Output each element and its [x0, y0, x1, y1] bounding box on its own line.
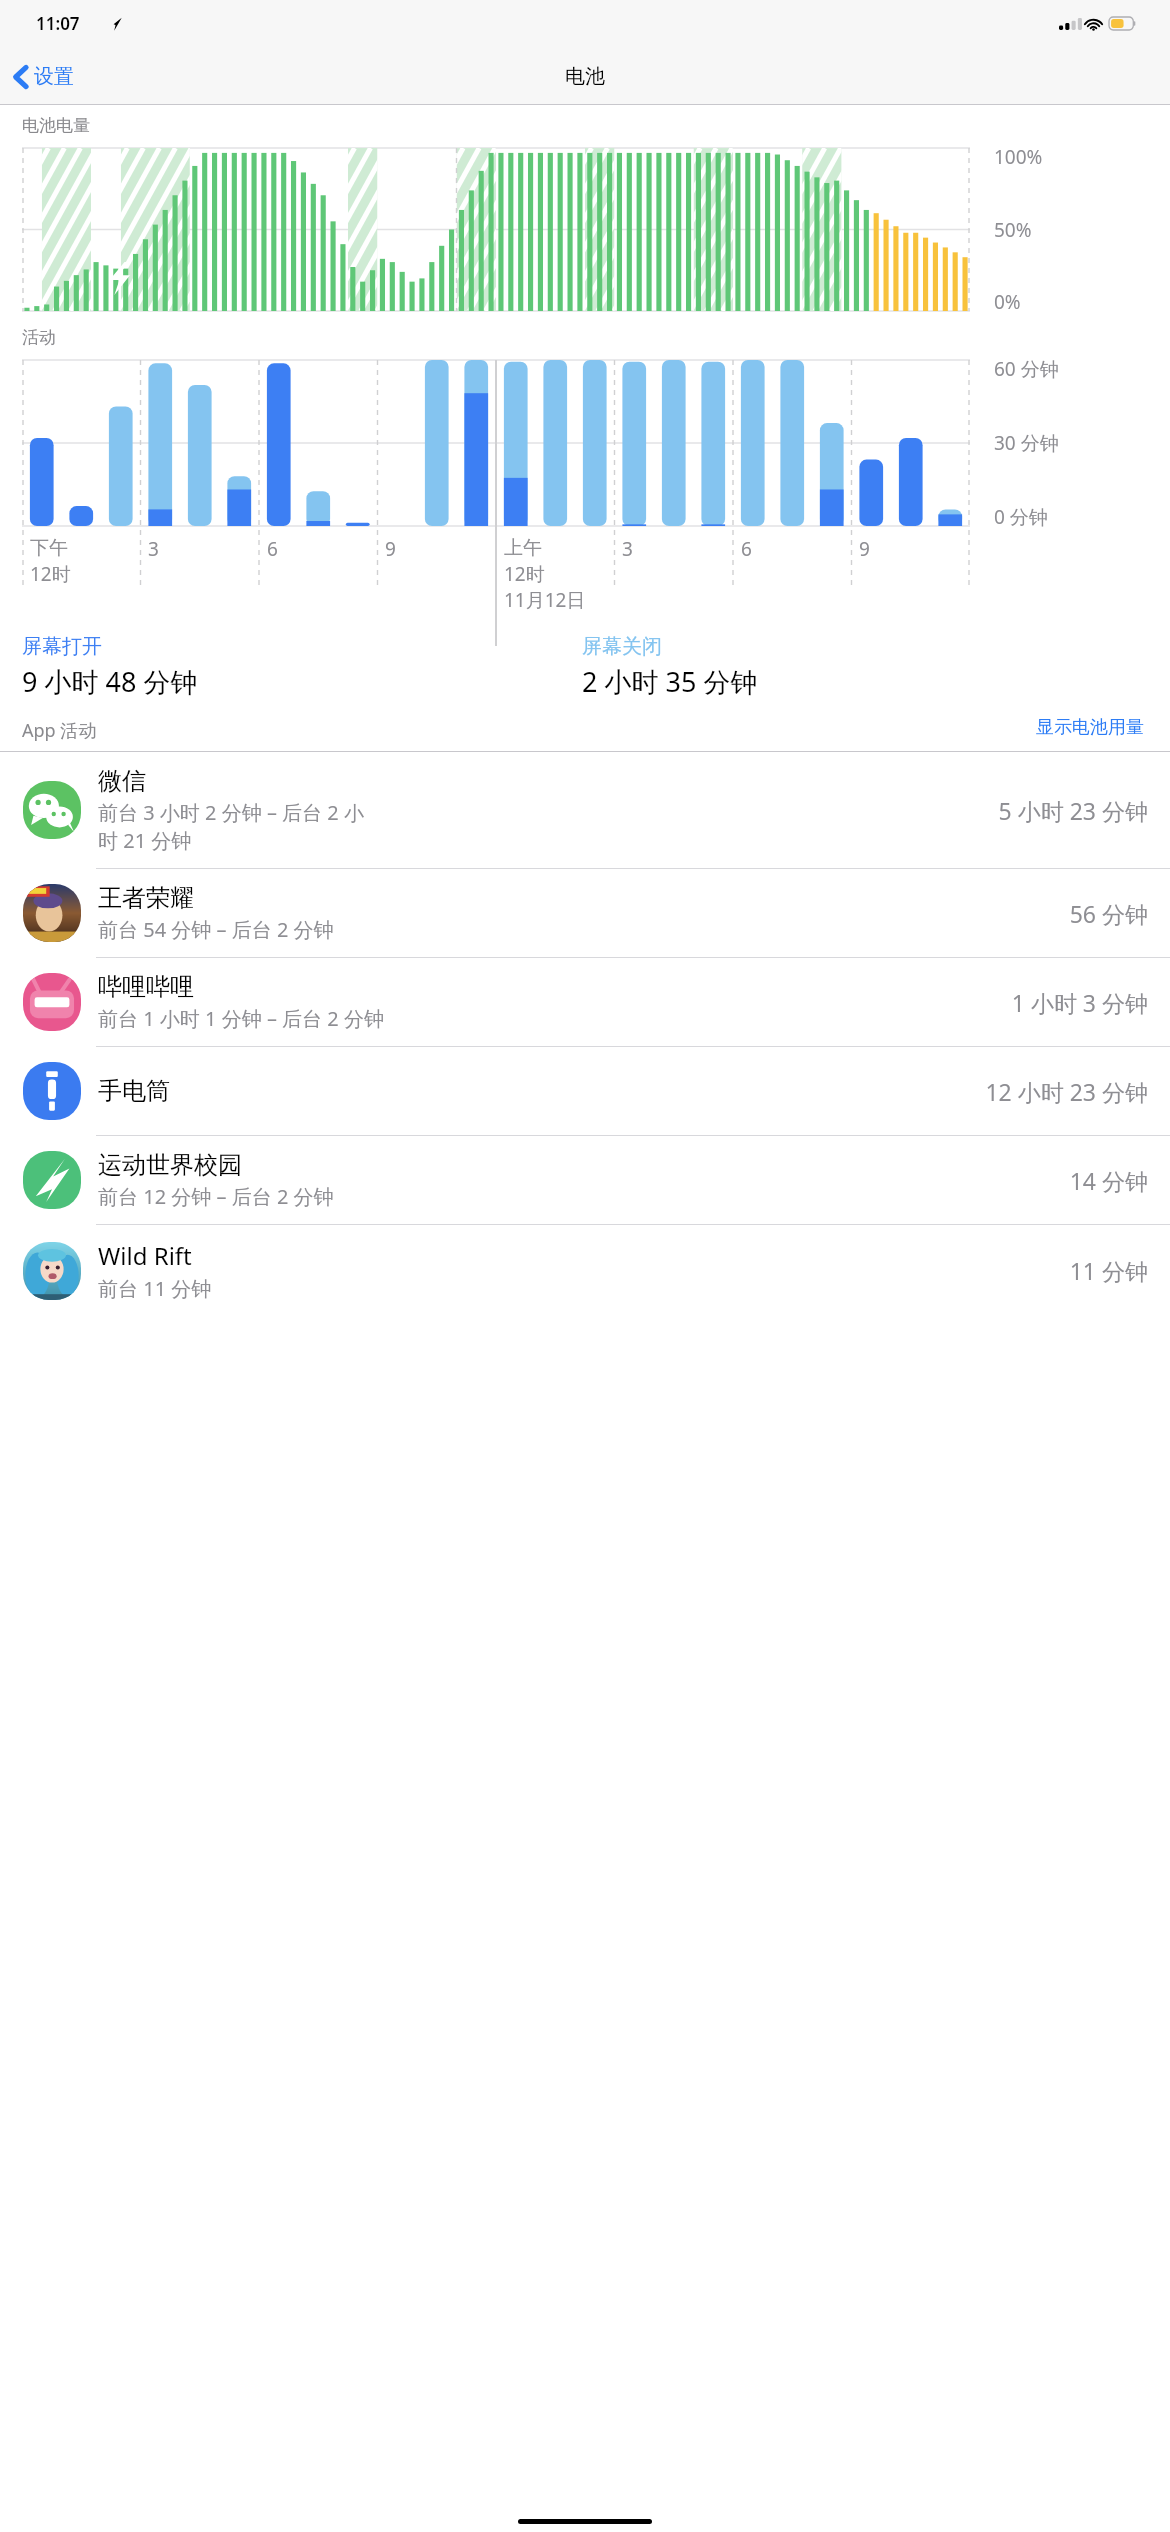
other: 运动世界校园 — [23, 1151, 81, 1209]
staticText: 微信 — [98, 766, 146, 796]
staticText: 屏幕关闭 — [582, 634, 662, 659]
staticText: 9 — [385, 536, 396, 562]
staticText: 0 分钟 — [994, 504, 1048, 530]
staticText: 14 分钟 — [1069, 1165, 1148, 1196]
staticText: Wild Rift — [98, 1239, 192, 1272]
staticText: 电池 — [565, 64, 605, 89]
staticText: 1 小时 3 分钟 — [1011, 987, 1148, 1018]
button[interactable]: 运动世界校园 — [0, 1136, 1170, 1224]
button[interactable]: 设置 — [0, 58, 84, 95]
staticText: 3 — [622, 536, 633, 562]
staticText: 前台 54 分钟 – 后台 2 分钟 — [98, 916, 334, 943]
button[interactable]: 王者荣耀 — [0, 869, 1170, 957]
staticText: 活动 — [22, 327, 56, 348]
staticText: 11:07 — [36, 12, 80, 35]
staticText: 100% — [994, 144, 1043, 170]
staticText: 6 — [741, 536, 752, 562]
staticText: 11 分钟 — [1069, 1255, 1148, 1286]
staticText: 3 — [148, 536, 159, 562]
staticText: 6 — [267, 536, 278, 562]
staticText: 30 分钟 — [994, 430, 1059, 456]
staticText: 屏幕打开 — [22, 634, 102, 659]
staticText: 前台 12 分钟 – 后台 2 分钟 — [98, 1183, 334, 1210]
staticText: App 活动 — [22, 718, 97, 743]
other: 手电筒 — [23, 1062, 81, 1120]
staticText: 0% — [994, 289, 1021, 315]
other: 王者荣耀 — [23, 884, 81, 942]
staticText: 下午 12时 — [30, 536, 71, 586]
staticText: 设置 — [34, 64, 74, 89]
staticText: 50% — [994, 217, 1032, 243]
button[interactable]: 手电筒 — [0, 1047, 1170, 1135]
staticText: 哔哩哔哩 — [98, 972, 194, 1002]
staticText: 9 小时 48 分钟 — [22, 663, 198, 700]
button[interactable]: 显示电池用量 — [1032, 712, 1148, 743]
staticText: 电池电量 — [22, 115, 90, 136]
other: 微信 — [23, 781, 81, 839]
staticText: 56 分钟 — [1069, 898, 1148, 929]
other: Wild Rift — [23, 1242, 81, 1300]
staticText: 王者荣耀 — [98, 883, 194, 913]
staticText: 60 分钟 — [994, 356, 1059, 382]
staticText: 前台 1 小时 1 分钟 – 后台 2 分钟 — [98, 1005, 384, 1032]
staticText: 显示电池用量 — [1036, 716, 1144, 739]
staticText: 5 小时 23 分钟 — [998, 795, 1148, 826]
other: 哔哩哔哩 — [23, 973, 81, 1031]
staticText: 前台 11 分钟 — [98, 1275, 212, 1302]
staticText: 手电筒 — [98, 1076, 170, 1106]
button[interactable]: 微信 — [0, 752, 1170, 868]
staticText: 12 小时 23 分钟 — [985, 1076, 1148, 1107]
staticText: 9 — [859, 536, 870, 562]
staticText: 2 小时 35 分钟 — [582, 663, 758, 700]
button[interactable]: 哔哩哔哩 — [0, 958, 1170, 1046]
staticText: 运动世界校园 — [98, 1150, 242, 1180]
staticText: 上午 12时 11月12日 — [504, 536, 586, 612]
button[interactable]: Wild Rift — [0, 1225, 1170, 1316]
staticText: 前台 3 小时 2 分钟 – 后台 2 小 时 21 分钟 — [98, 799, 364, 854]
